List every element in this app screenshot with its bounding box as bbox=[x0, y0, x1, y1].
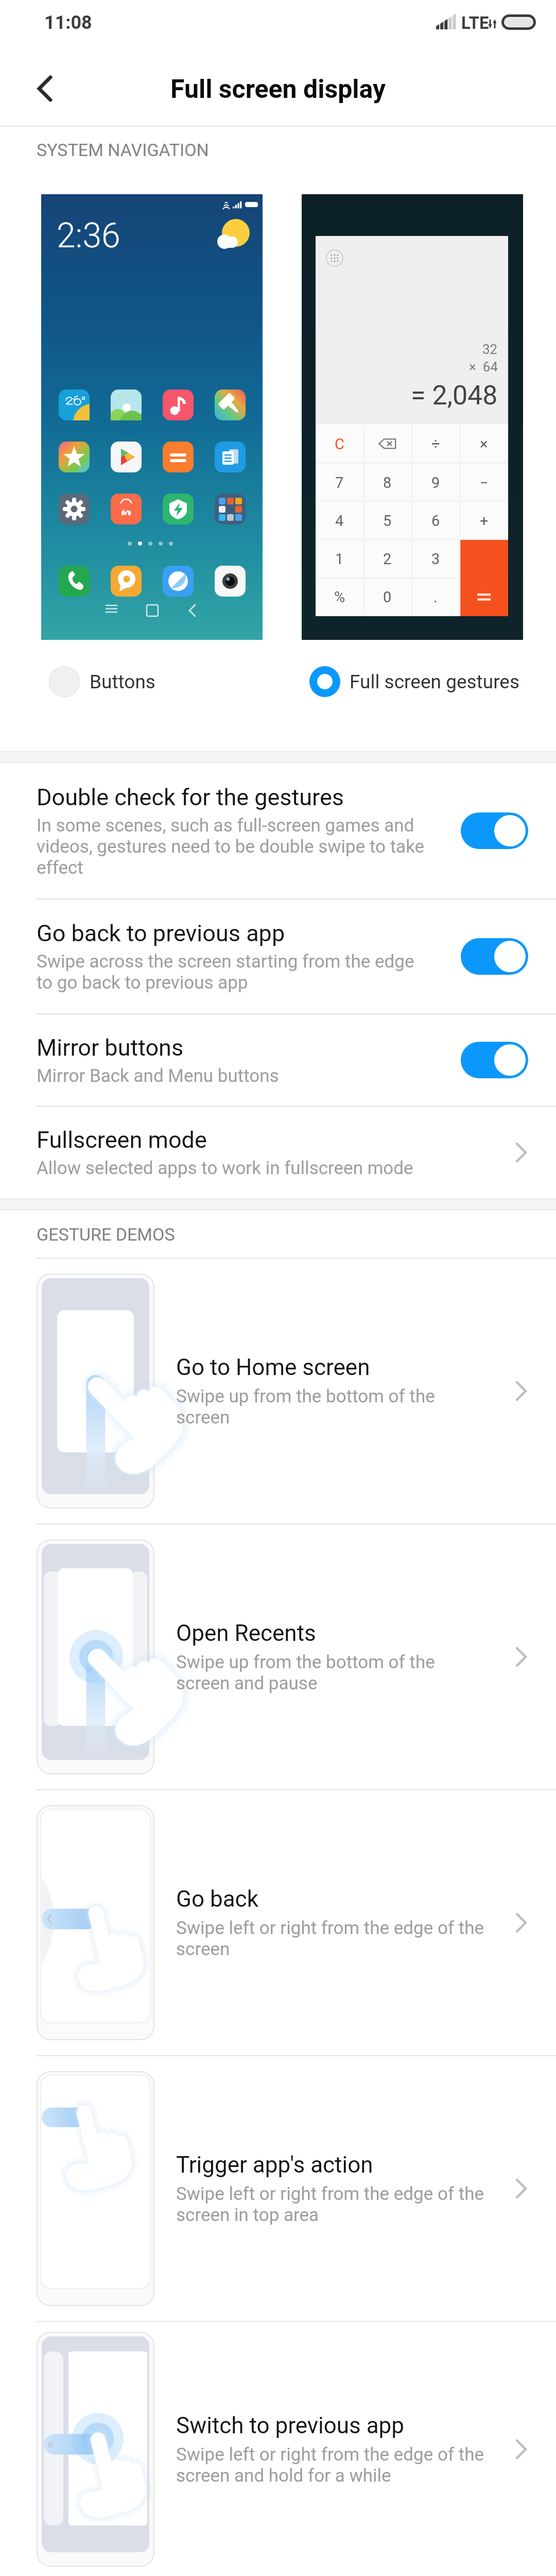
staticText: 5 bbox=[383, 512, 392, 530]
button[interactable]: Full screen gestures bbox=[309, 666, 520, 697]
staticText: Trigger app's action bbox=[176, 2151, 373, 2178]
staticText: ÷ bbox=[431, 435, 440, 453]
button[interactable]: Go back to previous app bbox=[0, 900, 556, 1013]
staticText: Open Recents bbox=[176, 1620, 316, 1647]
staticText: SYSTEM NAVIGATION bbox=[37, 140, 209, 160]
staticText: 0 bbox=[383, 588, 392, 606]
staticText: 11:08 bbox=[44, 12, 92, 33]
staticText: × 64 bbox=[469, 359, 498, 375]
button[interactable]: Toggle bbox=[461, 938, 528, 975]
button[interactable]: Double check for the gestures bbox=[0, 763, 556, 899]
button[interactable]: 32 bbox=[302, 194, 523, 640]
button[interactable]: Back bbox=[0, 52, 77, 126]
button[interactable]: 2:36 bbox=[41, 194, 263, 640]
staticText: Double check for the gestures bbox=[37, 784, 344, 811]
staticText: Go to Home screen bbox=[176, 1354, 370, 1381]
staticText: Swipe up from the bottom of the screen a… bbox=[176, 1652, 485, 1694]
staticText: Swipe up from the bottom of the screen bbox=[176, 1386, 485, 1428]
button[interactable]: Mirror buttons bbox=[0, 1014, 556, 1106]
staticText: C bbox=[335, 435, 344, 453]
staticText: GESTURE DEMOS bbox=[37, 1224, 175, 1245]
staticText: % bbox=[334, 588, 345, 606]
button[interactable]: Go back bbox=[0, 1790, 556, 2055]
button[interactable]: Go to Home screen bbox=[0, 1259, 556, 1523]
staticText: × bbox=[480, 435, 488, 453]
button[interactable]: Buttons bbox=[49, 666, 155, 697]
staticText: Swipe left or right from the edge of the… bbox=[176, 2183, 485, 2226]
button[interactable]: Open Recents bbox=[0, 1524, 556, 1789]
staticText: Swipe left or right from the edge of the… bbox=[176, 2444, 485, 2486]
button[interactable]: Toggle bbox=[461, 1042, 528, 1078]
staticText: Mirror buttons bbox=[37, 1034, 184, 1061]
staticText: 7 bbox=[335, 474, 344, 492]
staticText: 9 bbox=[431, 474, 440, 492]
staticText: Mirror Back and Menu buttons bbox=[37, 1065, 279, 1087]
button[interactable]: Trigger app's action bbox=[0, 2056, 556, 2321]
staticText: 3 bbox=[431, 550, 440, 568]
staticText: Full screen display bbox=[170, 74, 386, 105]
staticText: Buttons bbox=[90, 671, 155, 693]
staticText: 8 bbox=[383, 474, 392, 492]
staticText: Swipe across the screen starting from th… bbox=[37, 951, 432, 993]
staticText: = 2,048 bbox=[411, 380, 498, 411]
button[interactable]: Toggle bbox=[461, 812, 528, 849]
button[interactable]: Switch to previous app bbox=[0, 2322, 556, 2576]
staticText: 6 bbox=[431, 512, 440, 530]
staticText: Fullscreen mode bbox=[37, 1126, 207, 1154]
staticText: 2 bbox=[383, 550, 392, 568]
staticText: 2:36 bbox=[57, 216, 120, 256]
staticText: 32 bbox=[482, 342, 498, 357]
button[interactable]: Fullscreen mode bbox=[0, 1107, 556, 1198]
staticText: Go back to previous app bbox=[37, 920, 285, 947]
staticText: Switch to previous app bbox=[176, 2412, 405, 2439]
staticText: Allow selected apps to work in fullscree… bbox=[37, 1158, 413, 1179]
staticText: LTE bbox=[461, 13, 489, 33]
staticText: 1 bbox=[335, 550, 344, 568]
staticText: In some scenes, such as full-screen game… bbox=[37, 815, 432, 878]
staticText: + bbox=[480, 512, 489, 530]
staticText: − bbox=[480, 474, 489, 492]
staticText: 4 bbox=[335, 512, 344, 530]
staticText: Go back bbox=[176, 1886, 258, 1912]
staticText: Swipe left or right from the edge of the… bbox=[176, 1918, 485, 1960]
staticText: Full screen gestures bbox=[350, 671, 520, 693]
staticText: . bbox=[433, 588, 438, 606]
